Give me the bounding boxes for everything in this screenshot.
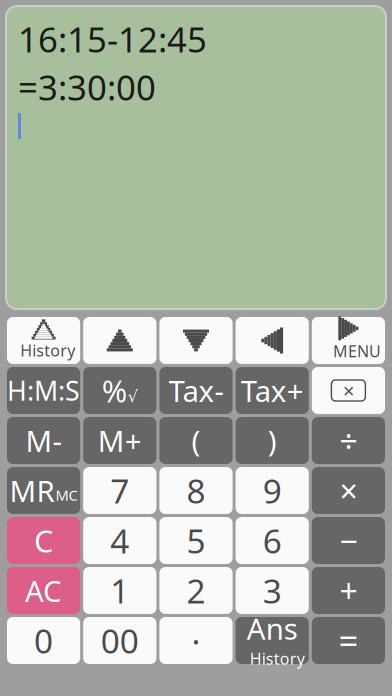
staticText: ÷ [339,419,357,462]
staticText: √ [128,387,138,406]
button[interactable]: MR MC [7,467,80,514]
staticText: 6 [263,518,282,563]
button[interactable]: ( [159,417,233,464]
staticText: =3:30:00 [18,64,156,110]
button[interactable]: 9 [236,467,309,514]
button[interactable]: Tax+ [236,367,309,414]
button[interactable]: Percent, square root [83,367,156,414]
button[interactable]: + [312,567,385,614]
staticText: Tax- [168,371,223,410]
button[interactable]: × [312,467,385,514]
button[interactable]: · [159,617,233,664]
staticText: 1 [110,568,129,613]
staticText: 0 [34,618,53,663]
staticText: 7 [110,468,129,513]
staticText: − [339,519,357,562]
staticText: · [191,618,200,663]
button[interactable]: Left [236,317,309,364]
staticText: M+ [98,421,142,460]
button[interactable]: 4 [83,517,156,564]
button[interactable]: ÷ [312,417,385,464]
staticText: ) [268,421,277,460]
button[interactable]: Menu [312,317,385,364]
button[interactable]: M+ [83,417,156,464]
staticText: AC [25,571,62,610]
button[interactable]: 7 [83,467,156,514]
button[interactable]: 1 [83,567,156,614]
staticText: % [102,370,127,411]
staticText: H:M:S [7,373,80,408]
button[interactable]: 5 [159,517,233,564]
staticText: Tax+ [241,371,304,410]
button[interactable]: Backspace [312,367,385,414]
button[interactable]: C [7,517,80,564]
staticText: 9 [263,468,282,513]
staticText: C [34,520,53,561]
staticText: 5 [186,518,205,563]
staticText: × [343,377,354,404]
button[interactable]: Tax- [159,367,233,414]
staticText: History [250,648,305,669]
button[interactable]: 2 [159,567,233,614]
staticText: MC [56,485,78,505]
button[interactable]: − [312,517,385,564]
staticText: 8 [186,468,205,513]
button[interactable]: 0 [7,617,80,664]
staticText: + [339,569,357,612]
staticText: History [20,340,75,361]
staticText: MR [10,471,55,510]
button[interactable]: Down [159,317,233,364]
button[interactable]: = [312,617,385,664]
staticText: 16:15-12:45 [18,16,207,62]
staticText: 3 [263,568,282,613]
staticText: ( [191,421,200,460]
staticText: MENU [333,340,381,362]
staticText: = [338,617,358,663]
button[interactable]: Ans History [236,617,309,664]
staticText: 00 [101,618,139,663]
button[interactable]: 8 [159,467,233,514]
button[interactable]: ) [236,417,309,464]
staticText: 4 [110,518,129,563]
button[interactable]: H:M:S [7,367,80,414]
staticText: Ans [247,609,298,648]
staticText: M- [26,421,62,460]
button[interactable]: 00 [83,617,156,664]
button[interactable]: 3 [236,567,309,614]
staticText: 2 [186,568,205,613]
button[interactable]: Up [83,317,156,364]
button[interactable]: M- [7,417,80,464]
button[interactable]: 6 [236,517,309,564]
button[interactable]: History [7,317,80,364]
button[interactable]: AC [7,567,80,614]
staticText: × [339,469,357,512]
